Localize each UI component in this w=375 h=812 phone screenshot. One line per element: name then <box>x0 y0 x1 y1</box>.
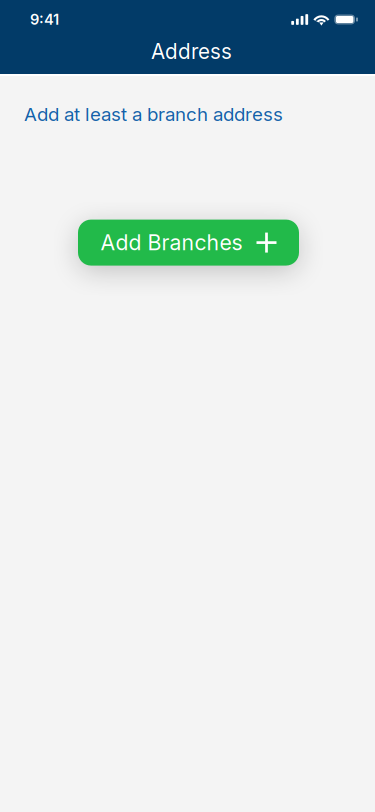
button[interactable]: Add Branches <box>78 220 299 266</box>
button[interactable]: Add at least a branch address <box>0 76 375 126</box>
staticText: Add Branches <box>100 230 242 255</box>
staticText: Address <box>151 39 232 64</box>
staticText: Add at least a branch address <box>24 103 283 126</box>
staticText: 9:41 <box>30 11 59 28</box>
